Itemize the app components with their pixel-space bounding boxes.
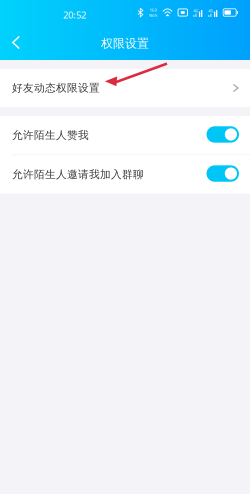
button[interactable]: Back <box>0 28 32 56</box>
staticText: 允许陌生人邀请我加入群聊 <box>12 168 144 181</box>
staticText: 允许陌生人赞我 <box>12 129 89 142</box>
staticText: 16.0 <box>149 7 156 12</box>
staticText: 好友动态权限设置 <box>12 81 100 94</box>
button[interactable]: 允许陌生人邀请我加入群聊 <box>198 160 239 188</box>
staticText: KB/S <box>149 12 157 18</box>
staticText: 4G <box>208 8 213 13</box>
button[interactable]: 好友动态权限设置 <box>0 69 250 107</box>
staticText: 20:52 <box>63 9 86 21</box>
staticText: 4G <box>193 8 198 13</box>
staticText: 权限设置 <box>101 36 149 51</box>
button[interactable]: 允许陌生人赞我 <box>198 121 239 149</box>
